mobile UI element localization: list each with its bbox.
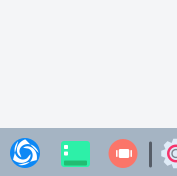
button[interactable]: Media [108, 139, 137, 168]
button[interactable]: Settings [161, 138, 177, 168]
button[interactable]: Notes [61, 141, 90, 167]
button[interactable]: Browser [10, 138, 40, 168]
